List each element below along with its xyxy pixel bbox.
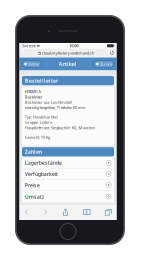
- staticText: Zahlen: [25, 148, 42, 155]
- button[interactable]: Verfügbarkeit: [22, 169, 114, 180]
- staticText: H00001-5: [25, 89, 41, 94]
- staticText: Sixt tenk: [22, 43, 36, 48]
- button[interactable]: Back: [21, 204, 32, 220]
- staticText: Artikel: [58, 60, 76, 68]
- staticText: Bockleiter: [25, 94, 43, 99]
- staticText: Gewicht: 10 Kg: [25, 134, 50, 140]
- button[interactable]: Lagerbestände: [22, 157, 114, 169]
- button[interactable]: Home: [22, 60, 41, 68]
- staticText: 16:00: [69, 43, 78, 48]
- button[interactable]: Preise: [22, 180, 114, 191]
- staticText: Lagerbestände: [25, 159, 62, 166]
- staticText: Zurück: [100, 61, 112, 67]
- staticText: Umsatz: [25, 193, 45, 200]
- staticText: einseitig begehbar, Tritthöhe 60 mm: [25, 105, 86, 110]
- staticText: Preise: [25, 182, 40, 189]
- staticText: cloud.myfactory-ondemand.ch: [42, 50, 94, 56]
- button[interactable]: Umsatz: [22, 191, 114, 202]
- staticText: Bestellleiter: [25, 77, 58, 84]
- staticText: Bockleiter aus Leichtmetall: [25, 99, 72, 105]
- button[interactable]: Zurück: [94, 60, 114, 68]
- staticText: Gruppe: Leitern: [25, 120, 52, 125]
- button[interactable]: Tabs: [102, 204, 115, 220]
- button[interactable]: Share: [59, 204, 72, 220]
- staticText: Home: [28, 61, 39, 67]
- staticText: Verfügbarkeit: [25, 170, 58, 178]
- staticText: Hauptlieferant: Stegbüchler KG, München: [25, 125, 95, 130]
- staticText: Typ: Handelsartikel: [25, 114, 58, 120]
- button[interactable]: Bookmarks: [80, 204, 94, 220]
- button[interactable]: Reload: [110, 51, 114, 55]
- button[interactable]: Forward: [40, 204, 51, 220]
